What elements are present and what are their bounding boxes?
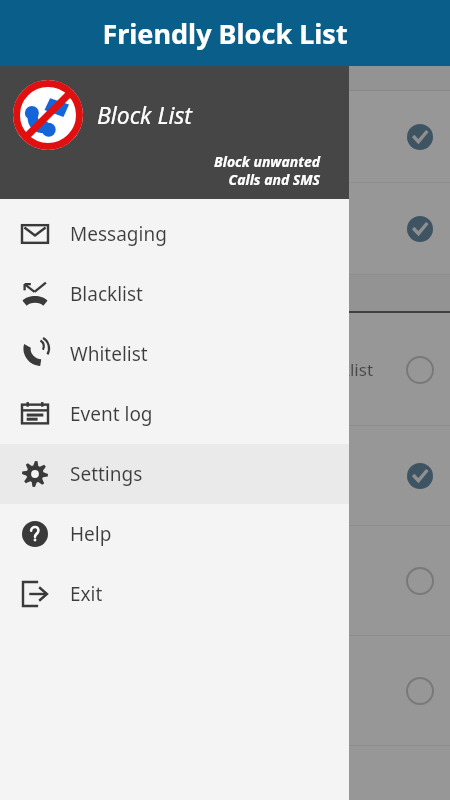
- staticText: Block List: [97, 99, 192, 130]
- staticText: Block calls from numbers that are not in…: [16, 114, 392, 160]
- button[interactable]: Block calls from numbers that are not in…: [0, 91, 450, 183]
- button[interactable]: Block SMS from numbers that are not in c…: [0, 183, 450, 275]
- button[interactable]: Settings: [0, 444, 349, 504]
- staticText: Whitelist: [70, 341, 148, 367]
- staticText: Block SMS from numbers in the blacklist: [16, 465, 337, 488]
- button[interactable]: Block calls from numbers in the whitelis…: [0, 526, 450, 636]
- staticText: Friendly Block List: [102, 15, 348, 52]
- staticText: Block unwanted Calls and SMS: [0, 152, 320, 189]
- staticText: Messaging: [70, 221, 167, 247]
- staticText: Event log: [70, 401, 153, 427]
- staticText: Blacklist: [70, 281, 143, 307]
- button[interactable]: Event log: [0, 384, 349, 444]
- button[interactable]: Exit: [0, 564, 349, 624]
- staticText: Block SMS from numbers that are not in c…: [16, 206, 392, 252]
- staticText: Exit: [70, 581, 103, 607]
- staticText: Settings: [70, 461, 143, 487]
- button[interactable]: Messaging: [0, 204, 349, 264]
- button[interactable]: Block SMS from numbers in the blacklist: [0, 426, 450, 526]
- staticText: Help: [70, 521, 112, 547]
- staticText: Block calls from numbers that are in bla…: [16, 358, 374, 381]
- button[interactable]: Block calls from numbers that are in bla…: [0, 313, 450, 426]
- staticText: Block calls from numbers in the whitelis…: [16, 570, 340, 593]
- button[interactable]: Whitelist: [0, 324, 349, 384]
- button[interactable]: Blacklist: [0, 264, 349, 324]
- button[interactable]: Allow SMS from numbers in the whitelist: [0, 636, 450, 746]
- button[interactable]: Help: [0, 504, 349, 564]
